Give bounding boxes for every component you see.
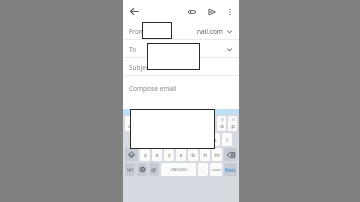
staticText: !#1 [127,167,134,173]
staticText: o [220,122,224,130]
button[interactable]: Settings [137,163,147,176]
staticText: Next [225,167,236,173]
button[interactable]: z [140,148,150,161]
staticText: @ [151,166,157,174]
button[interactable]: Back [126,3,142,19]
staticText: p [231,122,235,130]
button[interactable]: a [130,133,139,146]
staticText: To [129,45,137,54]
button[interactable]: . [198,163,208,176]
button[interactable]: 9 [217,116,226,131]
button[interactable]: ‹ ENGLISH › [161,163,196,176]
staticText: ‹ ENGLISH › [169,167,189,172]
button[interactable]: Attach file [184,4,199,19]
button[interactable]: Compose email [123,76,239,100]
staticText: z [144,151,147,159]
staticText: m [214,151,220,159]
staticText: nail.com [197,27,223,36]
staticText: b [191,151,195,159]
button[interactable]: n [200,148,210,161]
button[interactable]: 8 [206,116,215,131]
button[interactable]: Next [224,163,237,176]
staticText: l [226,136,228,144]
staticText: q [128,122,132,130]
button[interactable]: l [222,133,232,146]
staticText: x [155,151,159,159]
staticText: . [202,166,204,174]
staticText: 0 [232,117,235,122]
button[interactable]: k [210,133,220,146]
staticText: n [203,151,207,159]
staticText: v [179,151,183,159]
button[interactable]: Subject [123,58,239,76]
button[interactable]: Backspace [224,148,237,161]
staticText: c [168,151,171,159]
staticText: 9 [221,117,224,122]
button[interactable]: m [212,148,222,161]
button[interactable]: Symbols [125,163,135,176]
staticText: 1 [129,117,132,122]
button[interactable]: From [123,22,239,40]
button[interactable]: b [188,148,198,161]
button[interactable]: At sign [149,163,159,176]
button[interactable]: Send [204,4,219,19]
staticText: .com [211,167,221,173]
button[interactable]: c [164,148,174,161]
staticText: Compose email [129,84,177,93]
button[interactable]: v [176,148,186,161]
button[interactable]: 1 [125,116,135,131]
button[interactable]: x [152,148,162,161]
staticText: Subject [129,63,152,72]
button[interactable]: More options [223,5,237,19]
staticText: k [213,136,217,144]
button[interactable]: Shift [125,148,138,161]
staticText: From [129,27,145,36]
button[interactable]: .com [210,163,222,176]
button[interactable]: To [123,40,239,58]
button[interactable]: 0 [228,116,237,131]
